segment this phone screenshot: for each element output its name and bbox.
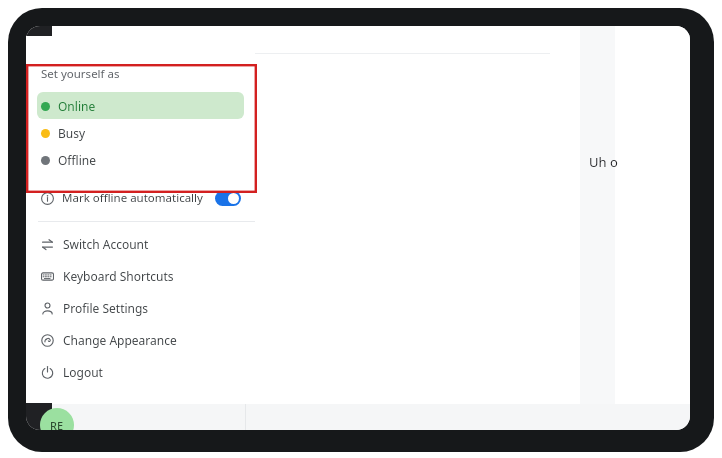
button[interactable]: Offline (37, 146, 244, 173)
button[interactable]: Logout (26, 356, 255, 388)
button[interactable]: Change Appearance (26, 324, 255, 356)
staticText: Mark offline automatically (62, 190, 203, 206)
staticText: Uh o (589, 153, 618, 171)
button[interactable]: Busy (37, 119, 244, 146)
button[interactable]: Switch Account (26, 228, 255, 260)
staticText: Logout (63, 364, 103, 380)
button[interactable]: Online (37, 92, 244, 119)
staticText: Offline (58, 152, 97, 168)
staticText: Switch Account (63, 236, 149, 252)
staticText: Change Appearance (63, 332, 177, 348)
button[interactable]: Mark offline automatically toggle (215, 191, 241, 206)
staticText: RE (50, 418, 64, 430)
staticText: Set yourself as (41, 66, 120, 82)
staticText: Keyboard Shortcuts (63, 268, 174, 284)
button[interactable]: Mark offline automatically (26, 183, 255, 213)
staticText: Profile Settings (63, 300, 149, 316)
button[interactable]: Keyboard Shortcuts (26, 260, 255, 292)
button[interactable]: Account avatar (40, 408, 74, 430)
staticText: Busy (58, 125, 86, 141)
button[interactable]: Profile Settings (26, 292, 255, 324)
staticText: Online (58, 98, 96, 114)
